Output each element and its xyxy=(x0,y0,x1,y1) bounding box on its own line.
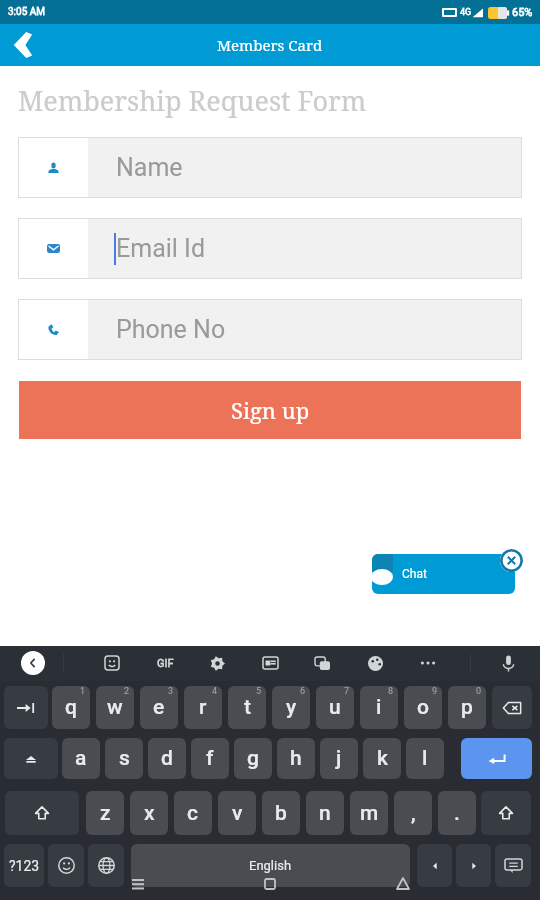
other: shift xyxy=(481,791,531,835)
staticText: e xyxy=(153,695,165,720)
button[interactable]: u xyxy=(316,686,354,729)
button[interactable]: English xyxy=(131,844,410,887)
button[interactable]: tab xyxy=(4,686,48,729)
button[interactable]: o xyxy=(404,686,442,729)
button[interactable]: . xyxy=(438,791,476,835)
staticText: Chat xyxy=(402,567,427,581)
staticText: . xyxy=(454,801,460,826)
button[interactable]: r xyxy=(184,686,222,729)
button[interactable]: h xyxy=(277,738,315,779)
staticText: ?123 xyxy=(9,858,40,874)
staticText: 8 xyxy=(388,686,394,697)
button[interactable]: Keyboard settings xyxy=(495,844,531,887)
staticText: y xyxy=(286,695,297,720)
button[interactable]: Name xyxy=(18,137,522,198)
button[interactable]: j xyxy=(320,738,358,779)
button[interactable]: Back xyxy=(0,24,46,66)
button[interactable]: q xyxy=(52,686,90,729)
button[interactable]: Move cursor left xyxy=(417,844,452,887)
button[interactable]: b xyxy=(262,791,300,835)
staticText: r xyxy=(199,695,207,720)
button[interactable]: v xyxy=(218,791,256,835)
button[interactable]: x xyxy=(130,791,168,835)
button[interactable]: Voice input xyxy=(496,651,520,675)
staticText: 0 xyxy=(476,686,482,697)
button[interactable]: sticker xyxy=(100,651,124,675)
button[interactable]: m xyxy=(350,791,388,835)
button[interactable]: theme xyxy=(363,651,387,675)
staticText: i xyxy=(376,695,382,720)
staticText: l xyxy=(422,746,428,771)
other: tab xyxy=(4,686,48,729)
staticText: 2 xyxy=(124,686,130,697)
button[interactable]: p xyxy=(448,686,486,729)
button[interactable]: shift xyxy=(481,791,531,835)
button[interactable]: k xyxy=(363,738,401,779)
staticText: c xyxy=(187,801,199,826)
button[interactable]: g xyxy=(234,738,272,779)
button[interactable]: translate xyxy=(310,651,334,675)
button[interactable]: Change language xyxy=(88,844,124,887)
button[interactable]: backspace xyxy=(492,686,532,729)
button[interactable]: more xyxy=(416,651,440,675)
staticText: Name xyxy=(116,153,183,182)
button[interactable]: a xyxy=(62,738,100,779)
button[interactable]: Sign up xyxy=(19,381,521,439)
button[interactable]: Phone No xyxy=(18,299,522,360)
staticText: Sign up xyxy=(231,395,310,425)
staticText: g xyxy=(247,746,259,771)
button[interactable]: e xyxy=(140,686,178,729)
staticText: s xyxy=(119,746,130,771)
other: caps xyxy=(4,738,58,779)
staticText: d xyxy=(161,746,173,771)
staticText: q xyxy=(65,695,77,720)
button[interactable]: clipboard xyxy=(258,651,282,675)
button[interactable]: i xyxy=(360,686,398,729)
staticText: , xyxy=(411,801,416,826)
button[interactable]: Emoji xyxy=(48,844,84,887)
staticText: 3:05 AM xyxy=(8,6,46,18)
button[interactable]: z xyxy=(86,791,124,835)
staticText: 5 xyxy=(256,686,262,697)
button[interactable]: y xyxy=(272,686,310,729)
staticText: t xyxy=(244,695,251,720)
staticText: n xyxy=(319,801,331,826)
staticText: z xyxy=(100,801,111,826)
button[interactable]: caps xyxy=(4,738,58,779)
button[interactable]: gif xyxy=(153,651,177,675)
button[interactable]: ?123 xyxy=(4,844,44,887)
button[interactable]: Move cursor right xyxy=(456,844,491,887)
staticText: 7 xyxy=(344,686,350,697)
button[interactable]: c xyxy=(174,791,212,835)
staticText: p xyxy=(461,695,473,720)
staticText: f xyxy=(206,746,214,771)
button[interactable]: w xyxy=(96,686,134,729)
staticText: w xyxy=(107,695,123,720)
staticText: Email Id xyxy=(116,234,205,263)
button[interactable]: Chat xyxy=(372,554,515,594)
staticText: o xyxy=(417,695,429,720)
button[interactable]: settings xyxy=(205,651,229,675)
button[interactable]: Close chat xyxy=(500,549,523,572)
button[interactable]: n xyxy=(306,791,344,835)
button[interactable]: Enter xyxy=(461,738,532,779)
staticText: 9 xyxy=(432,686,438,697)
button[interactable]: l xyxy=(406,738,444,779)
staticText: b xyxy=(275,801,287,826)
staticText: 4G xyxy=(460,7,472,18)
staticText: English xyxy=(249,858,292,873)
staticText: v xyxy=(232,801,243,826)
other: backspace xyxy=(492,686,532,729)
staticText: 65% xyxy=(512,6,533,19)
button[interactable]: t xyxy=(228,686,266,729)
button[interactable]: s xyxy=(105,738,143,779)
button[interactable]: Collapse toolbar xyxy=(21,651,45,675)
button[interactable]: Email Id xyxy=(18,218,522,279)
other: shift xyxy=(5,791,79,835)
button[interactable]: d xyxy=(148,738,186,779)
button[interactable]: f xyxy=(191,738,229,779)
staticText: 3 xyxy=(168,686,174,697)
button[interactable]: , xyxy=(394,791,432,835)
staticText: Members Card xyxy=(217,35,323,55)
button[interactable]: shift xyxy=(5,791,79,835)
